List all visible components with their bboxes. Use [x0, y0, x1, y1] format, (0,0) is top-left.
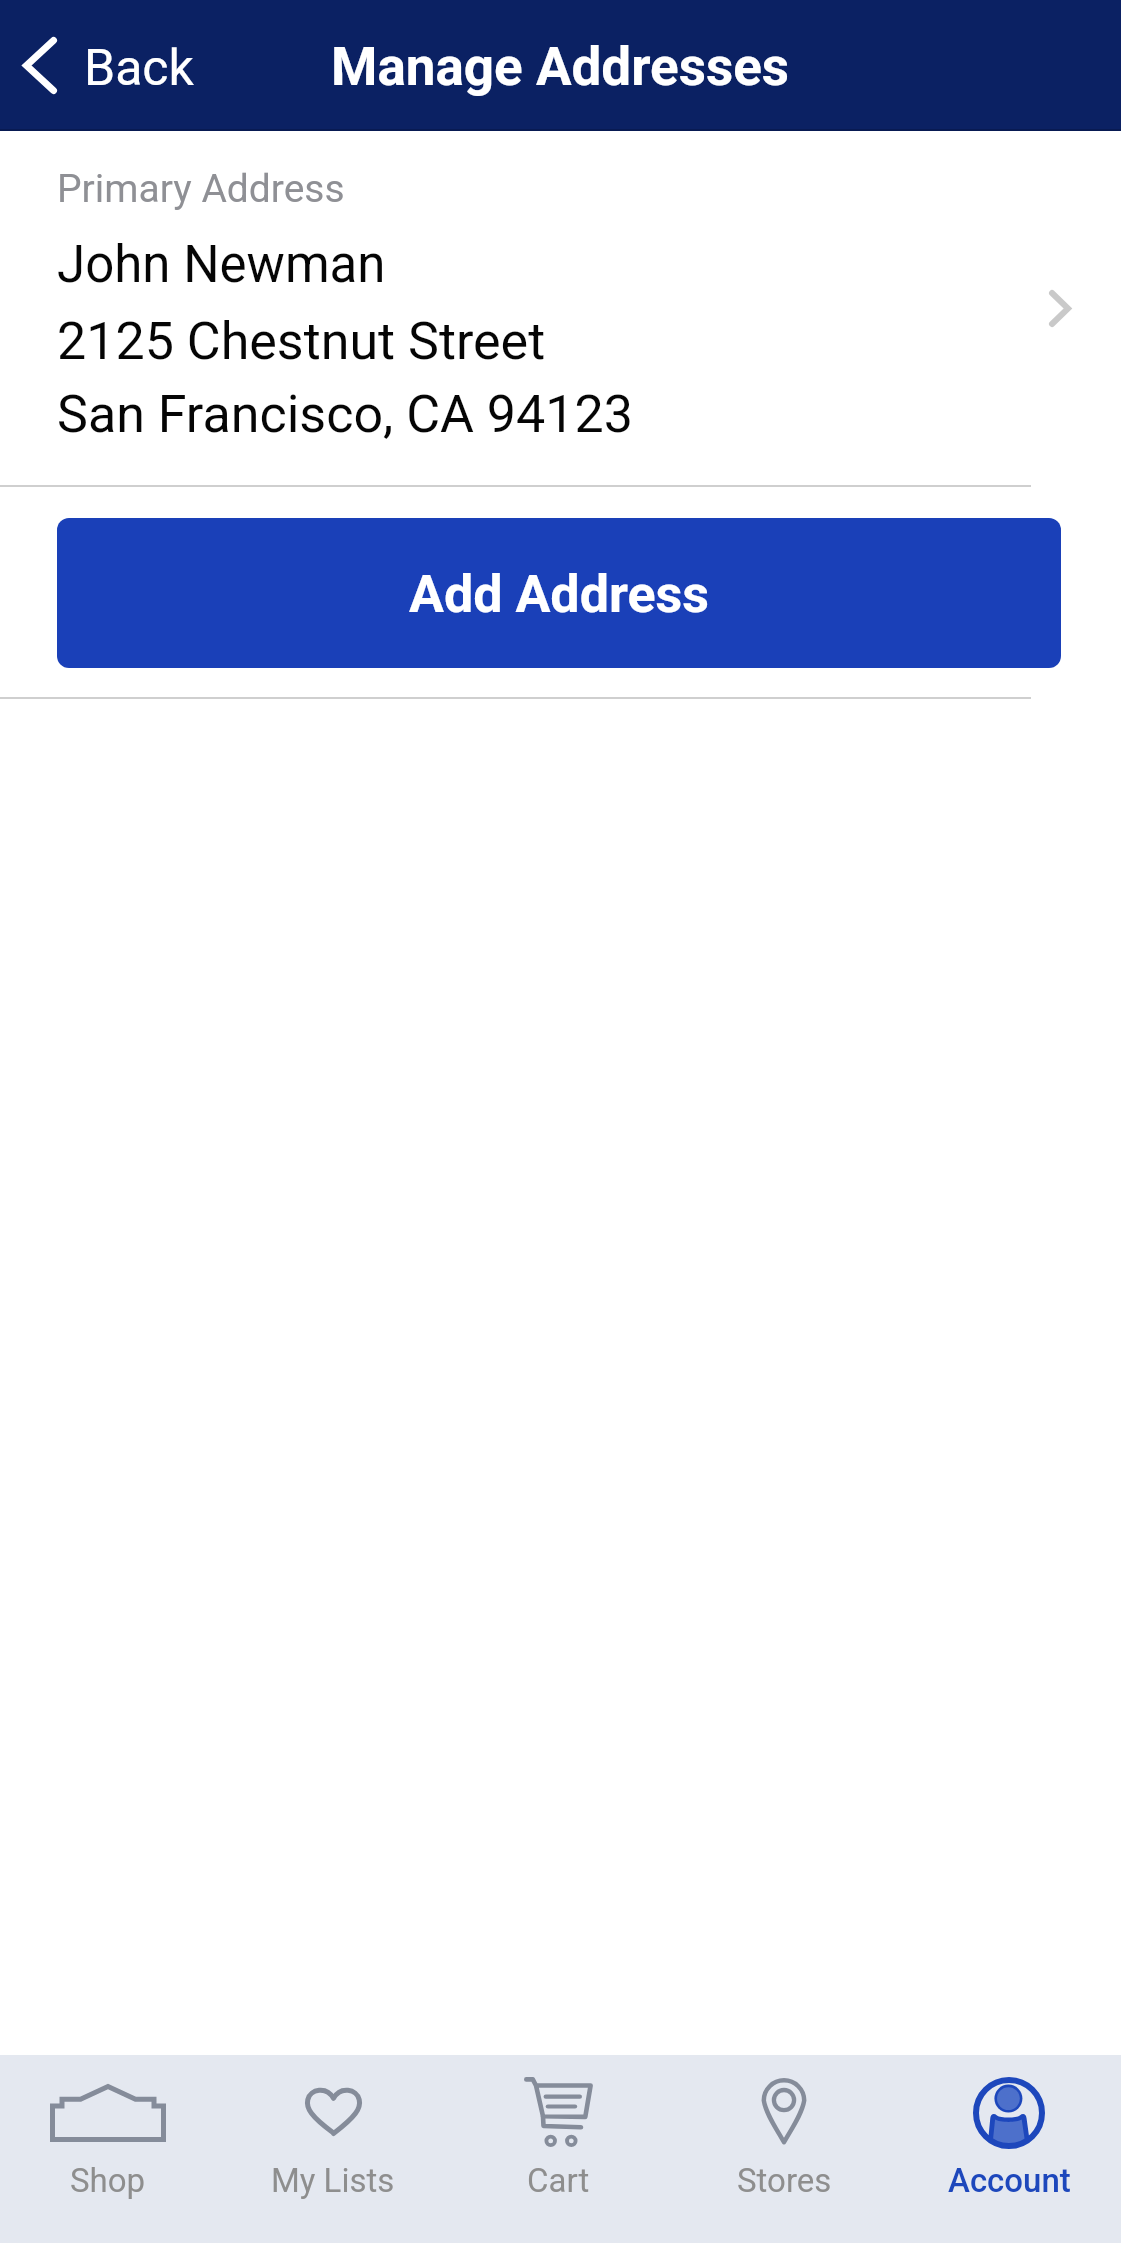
staticText: Primary Address [57, 166, 345, 212]
button[interactable]: Add Address [57, 518, 1061, 668]
button[interactable]: Shop [0, 2055, 225, 2243]
staticText: San Francisco, CA 94123 [57, 384, 633, 445]
staticText: John Newman [57, 235, 386, 295]
button[interactable]: Cart [449, 2055, 673, 2243]
button[interactable]: Primary Address, John Newman, edit [0, 131, 1121, 485]
staticText: Stores [737, 2161, 832, 2200]
staticText: Manage Addresses [331, 36, 790, 98]
button[interactable]: Back [0, 0, 214, 131]
staticText: Account [948, 2161, 1071, 2200]
staticText: My Lists [271, 2161, 395, 2200]
staticText: Add Address [409, 564, 709, 625]
staticText: Cart [527, 2161, 590, 2200]
button[interactable]: Stores [673, 2055, 897, 2243]
staticText: Back [84, 39, 194, 98]
staticText: 2125 Chestnut Street [57, 311, 546, 372]
button[interactable]: My Lists [225, 2055, 449, 2243]
button[interactable]: Account [897, 2055, 1121, 2243]
staticText: Shop [70, 2161, 146, 2200]
